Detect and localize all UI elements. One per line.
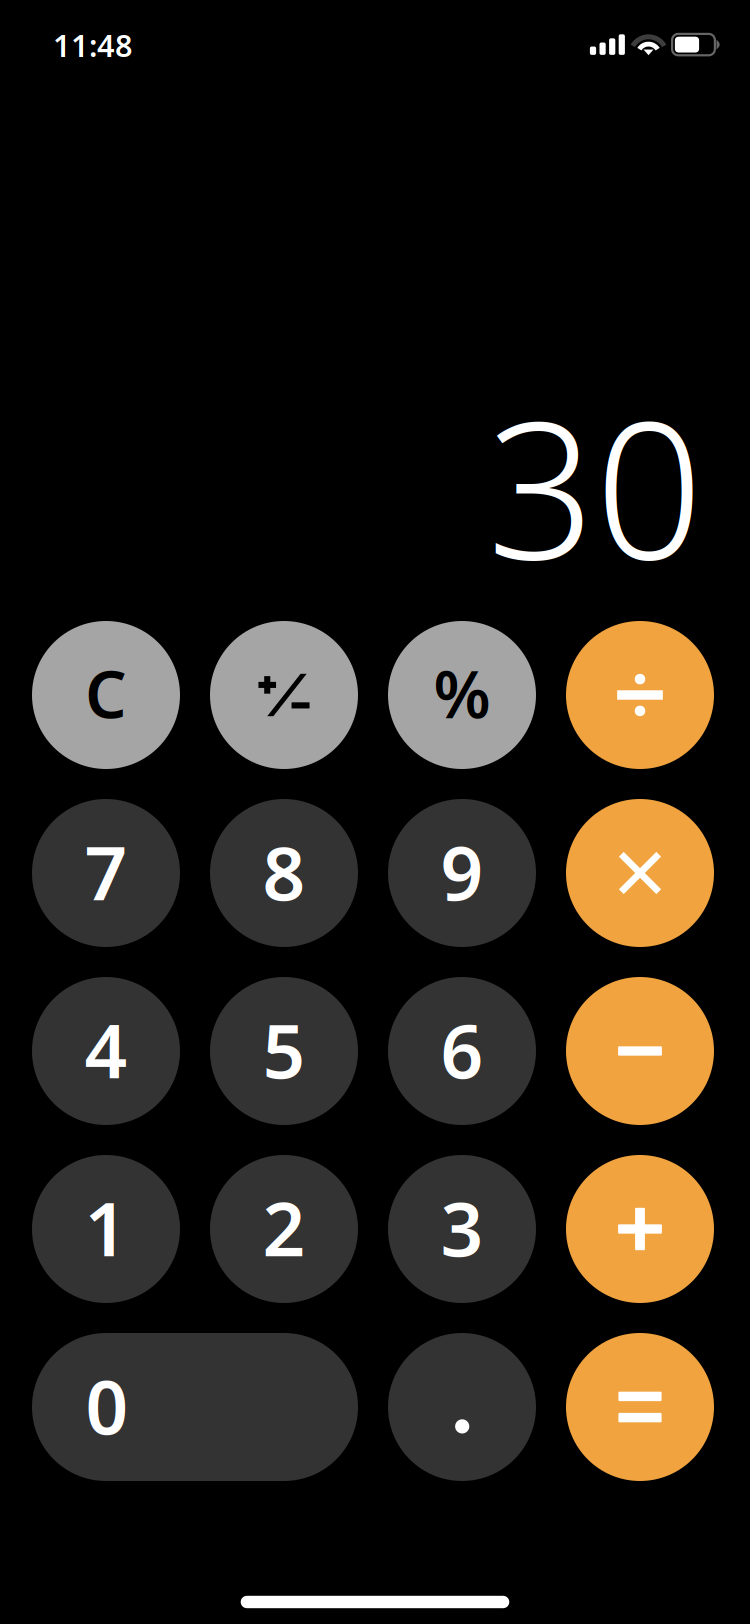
- button[interactable]: 3: [388, 1155, 536, 1303]
- staticText: 6: [440, 1000, 483, 1099]
- button[interactable]: 6: [388, 977, 536, 1125]
- staticText: 7: [84, 822, 127, 921]
- button[interactable]: Multiply: [566, 799, 714, 947]
- staticText: %: [433, 650, 490, 736]
- button[interactable]: Decimal point: [388, 1333, 536, 1481]
- staticText: 8: [262, 822, 305, 921]
- button[interactable]: 1: [32, 1155, 180, 1303]
- staticText: 2: [262, 1178, 305, 1277]
- button[interactable]: Subtract: [566, 977, 714, 1125]
- button[interactable]: 7: [32, 799, 180, 947]
- staticText: C: [85, 650, 127, 736]
- button[interactable]: 9: [388, 799, 536, 947]
- staticText: 1: [84, 1178, 127, 1277]
- staticText: 0: [85, 1356, 128, 1455]
- button[interactable]: 4: [32, 977, 180, 1125]
- button[interactable]: %: [388, 621, 536, 769]
- button[interactable]: Divide: [566, 621, 714, 769]
- button[interactable]: 2: [210, 1155, 358, 1303]
- button[interactable]: Add: [566, 1155, 714, 1303]
- button[interactable]: 5: [210, 977, 358, 1125]
- button[interactable]: 8: [210, 799, 358, 947]
- button[interactable]: Equals: [566, 1333, 714, 1481]
- staticText: 30: [487, 360, 703, 611]
- staticText: 4: [84, 1000, 127, 1099]
- staticText: 11:48: [53, 25, 133, 65]
- button[interactable]: C: [32, 621, 180, 769]
- button[interactable]: Plus Minus: [210, 621, 358, 769]
- staticText: 5: [262, 1000, 305, 1099]
- staticText: 9: [440, 822, 483, 921]
- staticText: 3: [440, 1178, 483, 1277]
- button[interactable]: 0: [32, 1333, 358, 1481]
